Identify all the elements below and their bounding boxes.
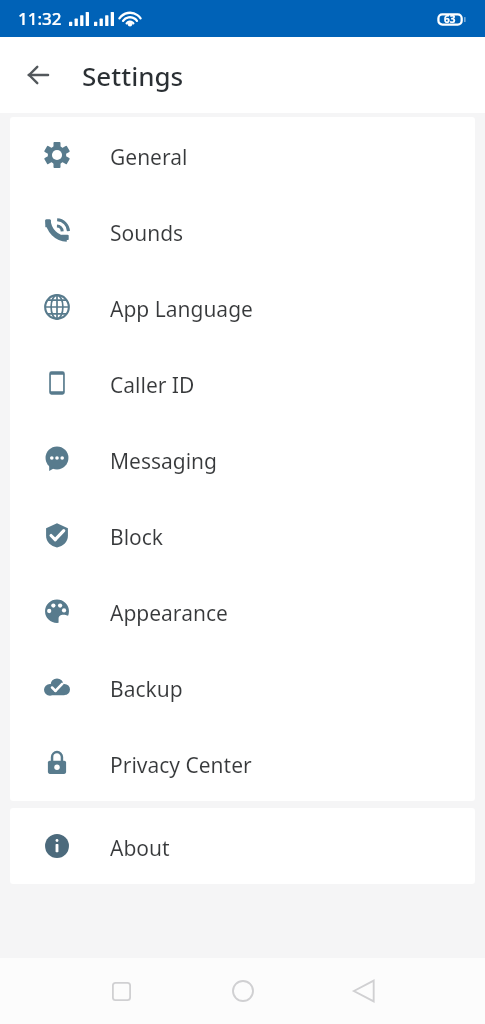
- staticText: About: [110, 834, 170, 863]
- staticText: Settings: [82, 58, 184, 93]
- button[interactable]: App Language: [10, 269, 475, 345]
- staticText: Sounds: [110, 219, 184, 248]
- button[interactable]: Block: [10, 497, 475, 573]
- button[interactable]: Backup: [10, 649, 475, 725]
- staticText: Messaging: [110, 447, 218, 476]
- staticText: Privacy Center: [110, 751, 252, 780]
- staticText: 11:32: [18, 7, 62, 30]
- button[interactable]: Caller ID: [10, 345, 475, 421]
- button[interactable]: About: [10, 808, 475, 884]
- button[interactable]: Privacy Center: [10, 725, 475, 801]
- button[interactable]: Sounds: [10, 193, 475, 269]
- staticText: Block: [110, 523, 164, 552]
- staticText: Appearance: [110, 599, 228, 628]
- staticText: General: [110, 143, 188, 172]
- staticText: Backup: [110, 675, 183, 704]
- button[interactable]: Appearance: [10, 573, 475, 649]
- button[interactable]: Messaging: [10, 421, 475, 497]
- button[interactable]: Back: [14, 51, 62, 99]
- button[interactable]: Home: [182, 958, 303, 1024]
- staticText: App Language: [110, 295, 253, 324]
- staticText: Caller ID: [110, 371, 195, 400]
- staticText: 63: [444, 12, 456, 26]
- button[interactable]: Back: [303, 958, 424, 1024]
- button[interactable]: Recent apps: [61, 958, 182, 1024]
- button[interactable]: General: [10, 117, 475, 193]
